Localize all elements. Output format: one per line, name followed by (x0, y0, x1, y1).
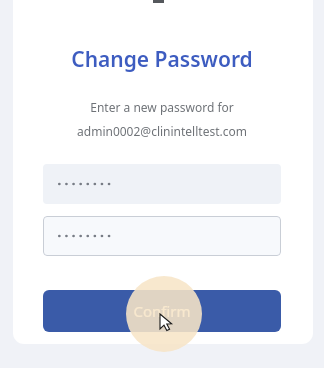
button[interactable]: Confirm (43, 290, 281, 332)
staticText: Change Password (71, 45, 253, 74)
button[interactable] (43, 164, 281, 204)
staticText: Confirm (133, 301, 191, 321)
staticText: Enter a new password for (90, 99, 234, 115)
staticText: admin0002@clinintelltest.com (77, 123, 247, 139)
button[interactable] (43, 216, 281, 256)
